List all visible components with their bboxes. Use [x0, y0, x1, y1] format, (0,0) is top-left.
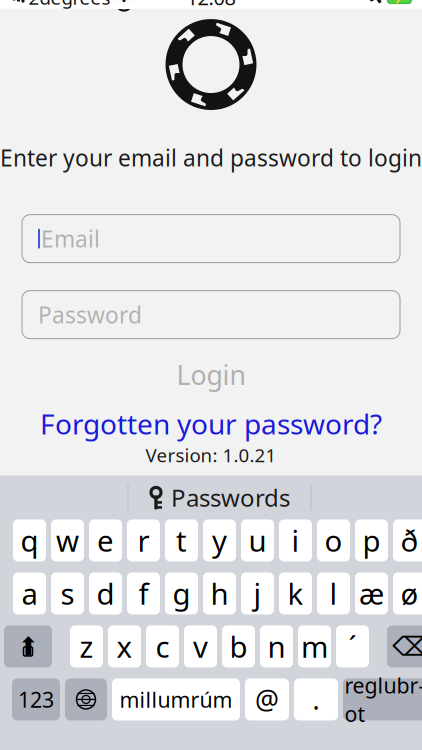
staticText: ´ [348, 627, 356, 666]
staticText: 2degrees [28, 0, 110, 10]
button[interactable]: v [184, 625, 217, 667]
staticText: v [193, 627, 208, 666]
button[interactable]: k [279, 572, 312, 614]
button[interactable]: 123 [12, 678, 60, 720]
button[interactable]: ø [393, 572, 422, 614]
staticText: x [116, 627, 132, 666]
staticText: Password [38, 300, 142, 330]
button[interactable]: Passwords [137, 478, 302, 516]
staticText: o [324, 521, 342, 560]
staticText: reglubrot [344, 671, 422, 728]
staticText: r [137, 521, 149, 560]
button[interactable]: m [298, 625, 331, 667]
staticText: i [291, 521, 299, 560]
button[interactable]: millumrúm [112, 678, 240, 720]
staticText: æ [359, 574, 384, 613]
staticText: . [312, 682, 319, 717]
button[interactable]: æ [355, 572, 388, 614]
staticText: k [287, 574, 303, 613]
button[interactable]: Login [0, 357, 422, 393]
button[interactable]: Forgotten your password? [0, 409, 422, 439]
button[interactable]: t [165, 519, 198, 561]
button[interactable]: y [203, 519, 236, 561]
staticText: Version: 1.0.21 [145, 443, 276, 467]
staticText: ø [400, 574, 418, 613]
staticText: h [210, 574, 228, 613]
staticText: Forgotten your password? [40, 405, 382, 442]
button[interactable]: x [108, 625, 141, 667]
button[interactable]: ð [393, 519, 422, 561]
button[interactable]: Next keyboard [65, 678, 107, 720]
button[interactable]: reglubrot [343, 678, 422, 720]
button[interactable]: p [355, 519, 388, 561]
staticText: ⚡ [392, 0, 407, 4]
staticText: ⬆ [17, 632, 38, 661]
button[interactable]: Delete [387, 625, 422, 667]
button[interactable]: u [241, 519, 274, 561]
button[interactable]: w [51, 519, 84, 561]
button[interactable]: a [13, 572, 46, 614]
staticText: w [56, 521, 79, 560]
button[interactable]: h [203, 572, 236, 614]
staticText: z [79, 627, 93, 666]
staticText: u [248, 521, 266, 560]
staticText: e [97, 521, 114, 560]
button[interactable]: ´ [336, 625, 369, 667]
staticText: p [362, 521, 380, 560]
button[interactable]: l [317, 572, 350, 614]
staticText: d [96, 574, 114, 613]
staticText: s [60, 574, 74, 613]
staticText: Email [41, 224, 100, 254]
button[interactable]: c [146, 625, 179, 667]
staticText: a [21, 574, 37, 613]
staticText: Enter your email and password to login [0, 143, 422, 173]
button[interactable]: q [13, 519, 46, 561]
button[interactable]: Shift [4, 625, 52, 667]
staticText: c [155, 627, 169, 666]
button[interactable]: @ [245, 678, 289, 720]
button[interactable]: n [260, 625, 293, 667]
staticText: ⌫ [392, 631, 422, 662]
button[interactable]: z [70, 625, 103, 667]
button[interactable]: g [165, 572, 198, 614]
staticText: l [329, 574, 337, 613]
staticText: Login [176, 357, 245, 392]
button[interactable]: b [222, 625, 255, 667]
button[interactable]: r [127, 519, 160, 561]
staticText: m [301, 627, 328, 666]
staticText: 123 [18, 685, 54, 714]
staticText: f [138, 574, 148, 613]
staticText: j [253, 574, 261, 613]
staticText: q [20, 521, 38, 560]
staticText: @ [255, 682, 279, 717]
button[interactable]: s [51, 572, 84, 614]
button[interactable]: j [241, 572, 274, 614]
staticText: ð [400, 521, 418, 560]
staticText: y [212, 521, 227, 560]
staticText: millumrúm [119, 685, 232, 714]
button[interactable]: d [89, 572, 122, 614]
staticText: Passwords [171, 481, 290, 513]
staticText: g [172, 574, 190, 613]
staticText: n [267, 627, 285, 666]
staticText: b [229, 627, 247, 666]
button[interactable]: e [89, 519, 122, 561]
button[interactable]: f [127, 572, 160, 614]
staticText: 12:08 [186, 0, 235, 11]
staticText: t [176, 521, 187, 560]
button[interactable]: o [317, 519, 350, 561]
button[interactable]: . [294, 678, 338, 720]
button[interactable]: i [279, 519, 312, 561]
